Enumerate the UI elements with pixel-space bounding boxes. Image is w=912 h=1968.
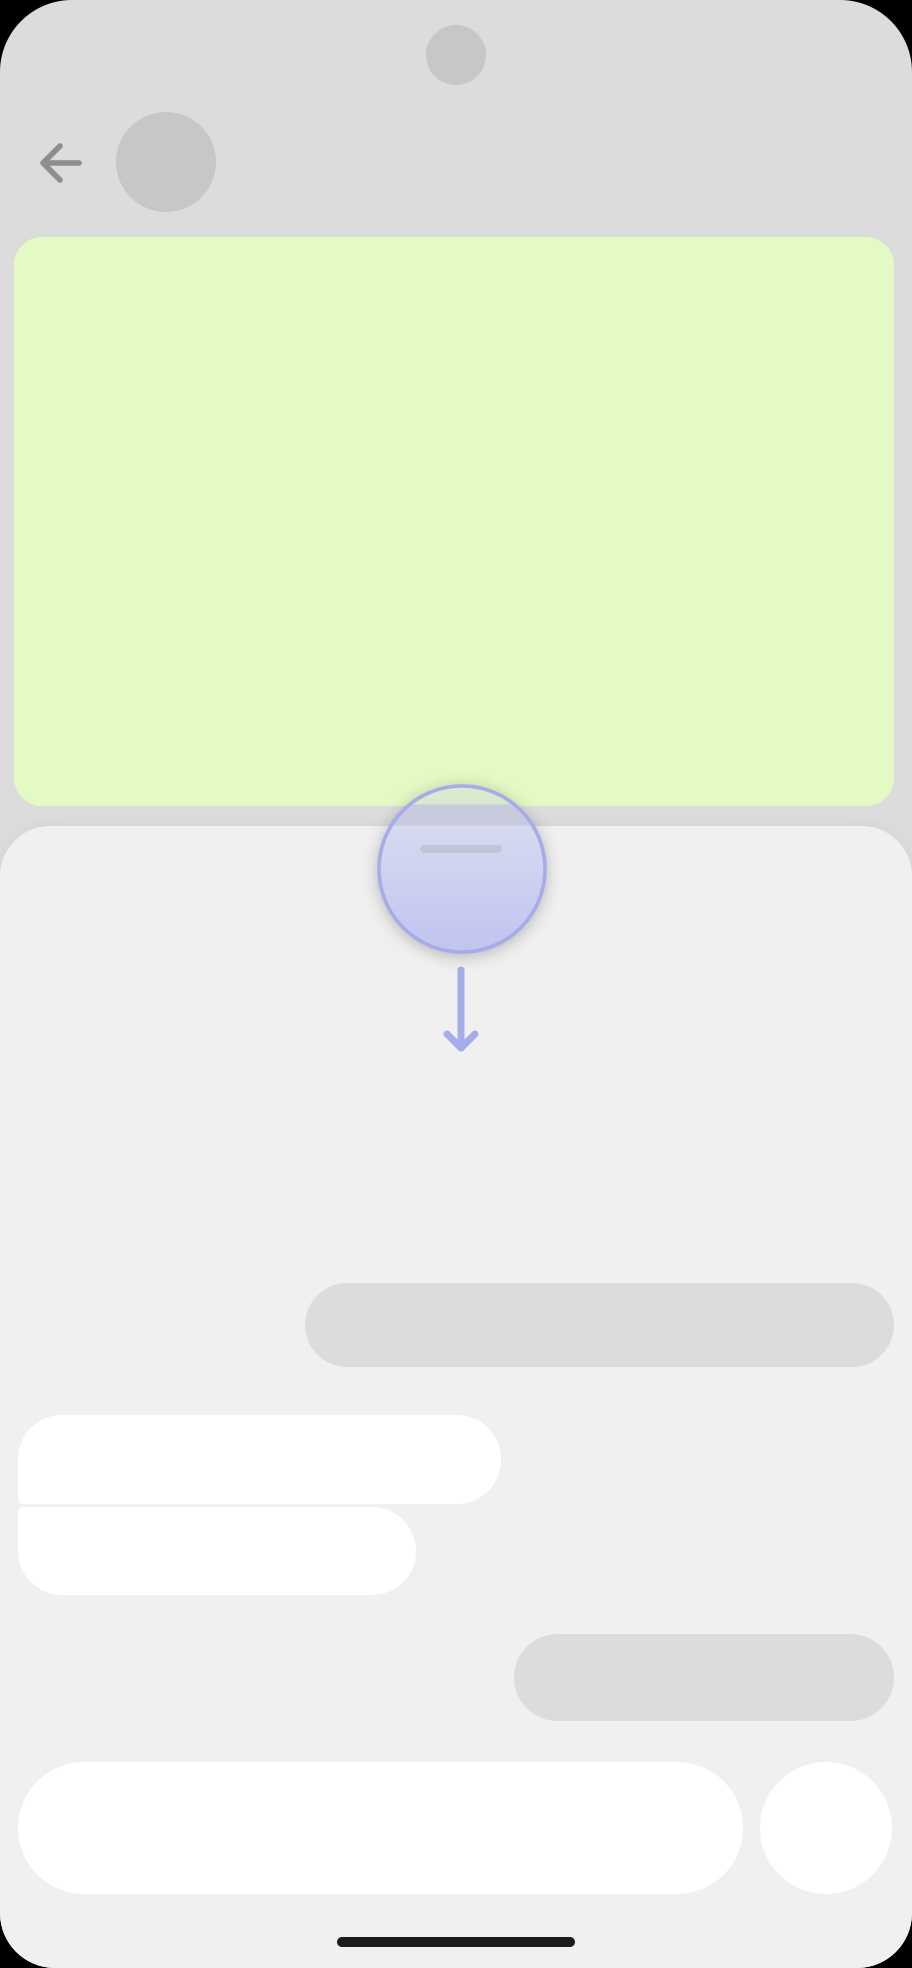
button[interactable]: Profile (116, 112, 216, 212)
button[interactable]: Back (38, 127, 110, 199)
button[interactable]: Send (760, 1762, 892, 1894)
